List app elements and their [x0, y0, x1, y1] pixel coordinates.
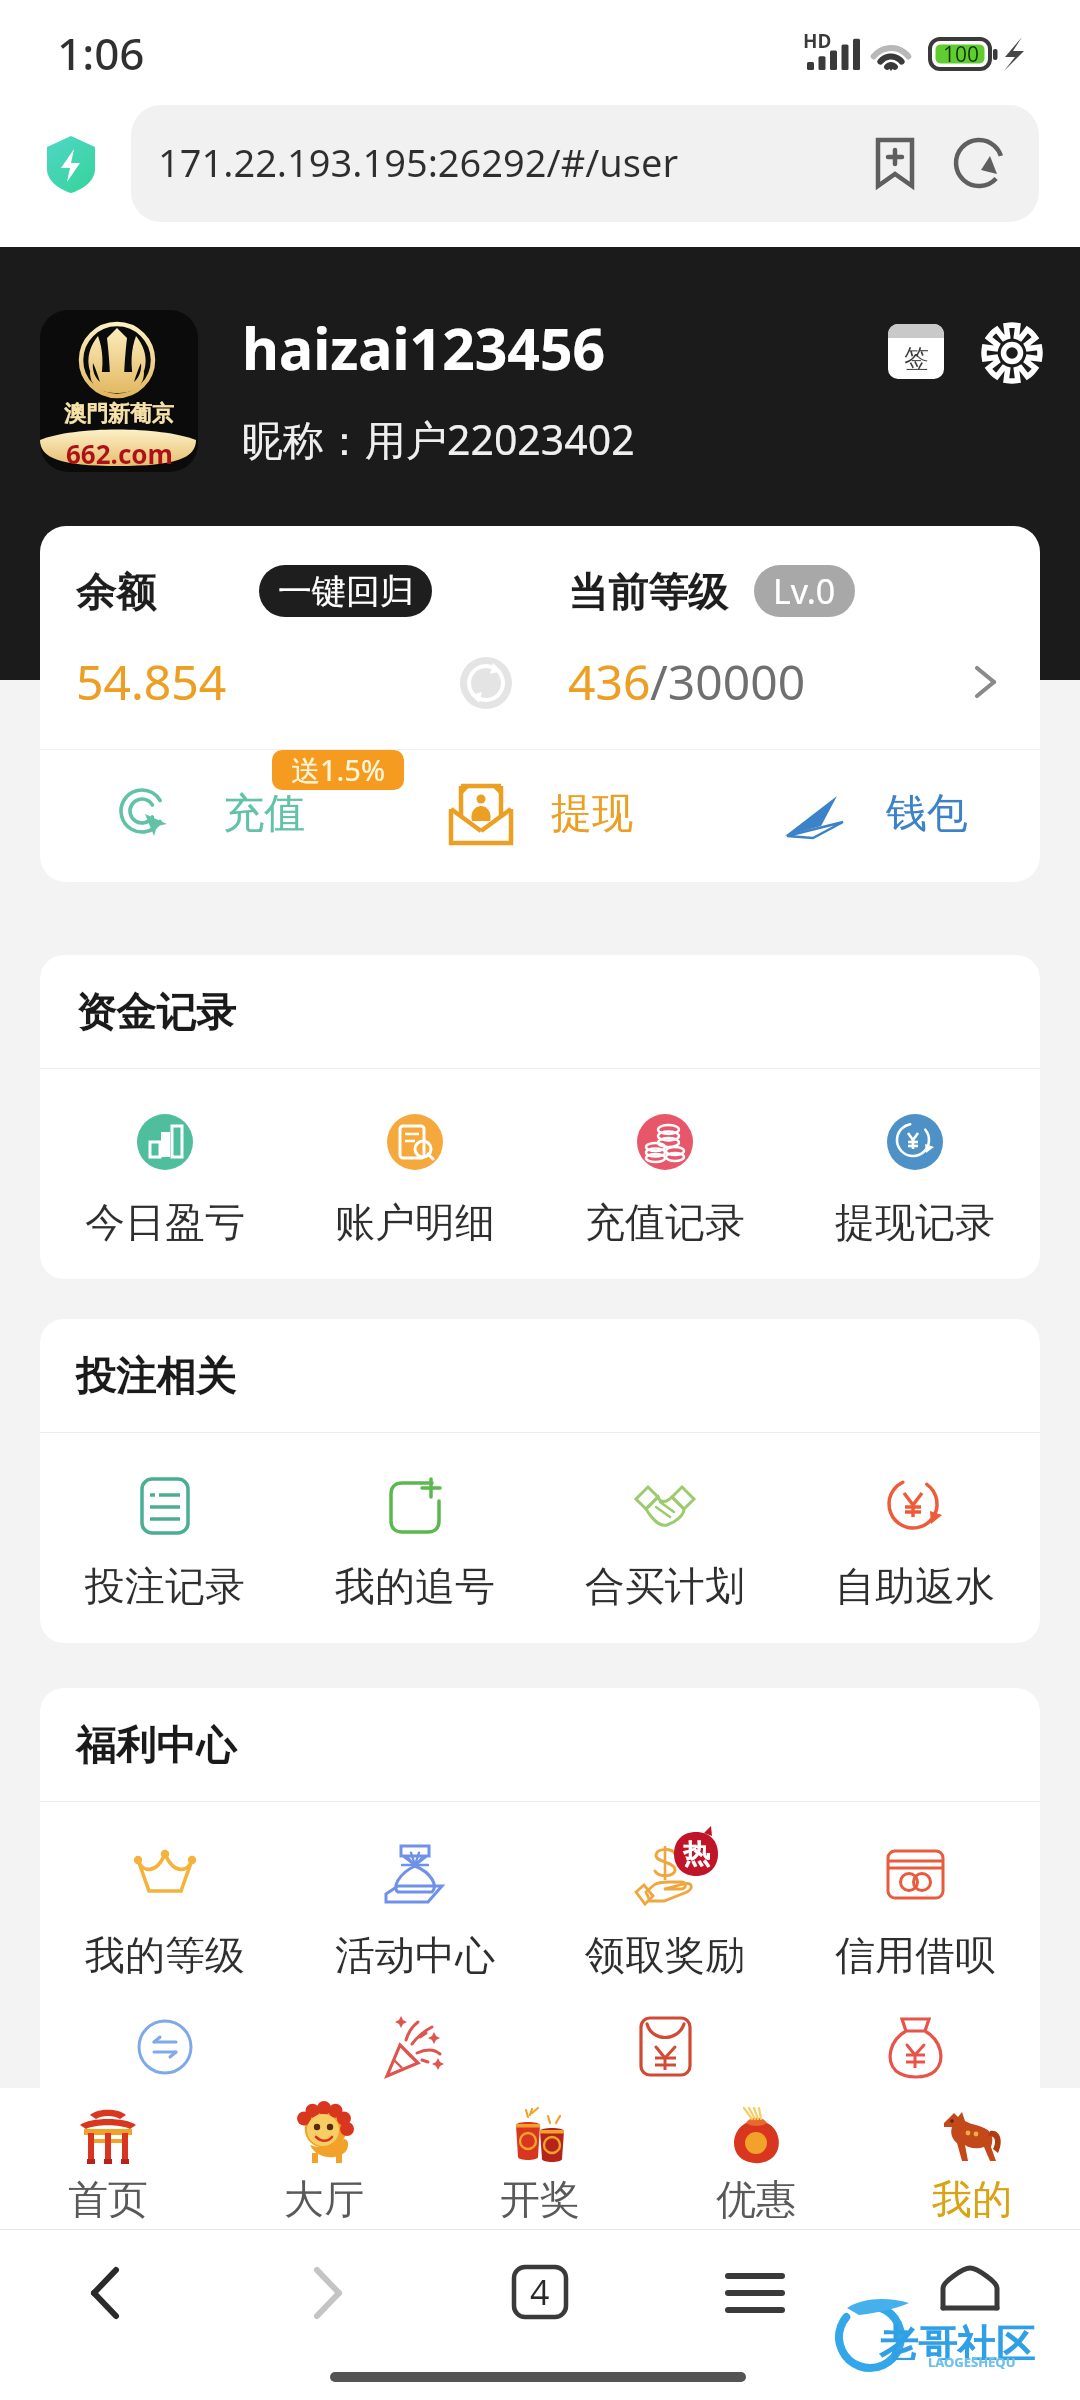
- staticText: Lv.0: [773, 568, 836, 614]
- button[interactable]: 活动中心: [305, 1808, 525, 1968]
- button[interactable]: Menu: [720, 2258, 790, 2328]
- staticText: 充值记录: [585, 1197, 745, 1247]
- staticText: 4: [530, 2269, 550, 2315]
- staticText: 签: [904, 343, 929, 374]
- button[interactable]: Refresh balance: [460, 657, 512, 709]
- staticText: 信用借呗: [835, 1930, 995, 1980]
- staticText: haizai123456: [242, 309, 606, 387]
- staticText: 资金记录: [76, 987, 236, 1037]
- button[interactable]: 我的等级: [55, 1808, 275, 1968]
- staticText: 今日盈亏: [85, 1197, 245, 1247]
- staticText: 大厅: [284, 2174, 364, 2224]
- button[interactable]: Home: [935, 2258, 1005, 2328]
- staticText: 活动中心: [335, 1930, 495, 1980]
- button[interactable]: 活动: [305, 1980, 525, 2140]
- button[interactable]: 钱包: [770, 752, 1010, 880]
- staticText: /30000: [650, 649, 806, 714]
- button[interactable]: Level detail: [949, 638, 1029, 726]
- staticText: 热: [683, 1837, 710, 1871]
- button[interactable]: 签: [888, 324, 944, 379]
- button[interactable]: 一键回归: [259, 565, 432, 617]
- button[interactable]: 今日盈亏: [55, 1075, 275, 1235]
- button[interactable]: 合买计划: [555, 1439, 775, 1599]
- button[interactable]: Back: [70, 2258, 140, 2328]
- button[interactable]: 钱袋: [805, 1980, 1025, 2140]
- staticText: 54.854: [76, 649, 227, 714]
- button[interactable]: 转账: [55, 1980, 275, 2140]
- button[interactable]: 信用借呗: [805, 1808, 1025, 1968]
- staticText: 充值: [223, 788, 305, 840]
- staticText: 提现: [551, 788, 633, 840]
- staticText: 钱包: [886, 788, 968, 840]
- button[interactable]: 热: [555, 1808, 775, 1968]
- button[interactable]: 账户明细: [305, 1075, 525, 1235]
- staticText: 送1.5%: [291, 750, 386, 790]
- staticText: 账户明细: [335, 1197, 495, 1247]
- staticText: 当前等级: [568, 567, 728, 617]
- staticText: 自助返水: [835, 1561, 995, 1611]
- button[interactable]: 开奖: [432, 2088, 648, 2230]
- button[interactable]: Avatar: [40, 310, 198, 472]
- other: Security: [47, 136, 95, 193]
- button[interactable]: 提现记录: [805, 1075, 1025, 1235]
- staticText: 老哥社区: [879, 2320, 1035, 2360]
- button[interactable]: 提现: [440, 752, 680, 880]
- staticText: 优惠: [716, 2174, 796, 2224]
- button[interactable]: 投注记录: [55, 1439, 275, 1599]
- staticText: 662.com: [66, 436, 173, 464]
- staticText: 171.22.193.195:26292/#/user: [158, 136, 679, 188]
- button[interactable]: 大厅: [216, 2088, 432, 2230]
- staticText: 合买计划: [585, 1561, 745, 1611]
- staticText: 我的: [932, 2174, 1012, 2224]
- staticText: 领取奖励: [585, 1930, 745, 1980]
- button[interactable]: 我的追号: [305, 1439, 525, 1599]
- staticText: 余额: [76, 567, 156, 617]
- staticText: LAOGESHEQU: [928, 2353, 1016, 2371]
- button[interactable]: 自助返水: [805, 1439, 1025, 1599]
- button[interactable]: Add bookmark: [862, 130, 928, 196]
- button[interactable]: Settings: [978, 319, 1046, 387]
- button[interactable]: 4: [514, 2267, 566, 2317]
- staticText: 开奖: [500, 2174, 580, 2224]
- button[interactable]: 优惠: [648, 2088, 864, 2230]
- button[interactable]: Forward: [293, 2258, 363, 2328]
- staticText: 投注相关: [76, 1351, 236, 1401]
- staticText: 一键回归: [278, 570, 414, 613]
- button[interactable]: 首页: [0, 2088, 216, 2230]
- staticText: 100: [943, 40, 980, 69]
- staticText: 福利中心: [76, 1720, 236, 1770]
- staticText: 投注记录: [85, 1561, 245, 1611]
- staticText: 我的追号: [335, 1561, 495, 1611]
- staticText: 436: [568, 649, 651, 714]
- staticText: 澳門新葡京: [64, 400, 174, 428]
- staticText: 我的等级: [85, 1930, 245, 1980]
- button[interactable]: 充值记录: [555, 1075, 775, 1235]
- staticText: 昵称：用户22023402: [242, 411, 635, 467]
- staticText: HD: [803, 28, 832, 52]
- staticText: 首页: [68, 2174, 148, 2224]
- button[interactable]: Reload: [946, 130, 1012, 196]
- button[interactable]: 我的: [864, 2088, 1080, 2230]
- button[interactable]: 红包: [555, 1980, 775, 2140]
- staticText: 1:06: [57, 23, 145, 83]
- staticText: 提现记录: [835, 1197, 995, 1247]
- button[interactable]: 171.22.193.195:26292/#/user: [131, 105, 1039, 222]
- button[interactable]: 充值: [100, 752, 340, 880]
